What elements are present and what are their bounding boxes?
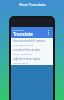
- staticText: a verb of the action: [13, 48, 41, 52]
- button[interactable]: adjective descriptor: [11, 56, 53, 65]
- staticText: substantive word: [13, 43, 34, 46]
- button[interactable]: More options: [46, 30, 51, 35]
- staticText: to do something: [13, 52, 33, 55]
- staticText: the noun which means: [13, 39, 46, 43]
- staticText: New Translate: [19, 2, 46, 7]
- staticText: ENGLISH: [13, 28, 24, 31]
- button[interactable]: the noun which means: [11, 38, 53, 47]
- staticText: Translate: [13, 31, 33, 37]
- staticText: adjective descriptor: [13, 57, 41, 61]
- button[interactable]: a verb of the action: [11, 47, 53, 56]
- staticText: quality word: [13, 61, 28, 64]
